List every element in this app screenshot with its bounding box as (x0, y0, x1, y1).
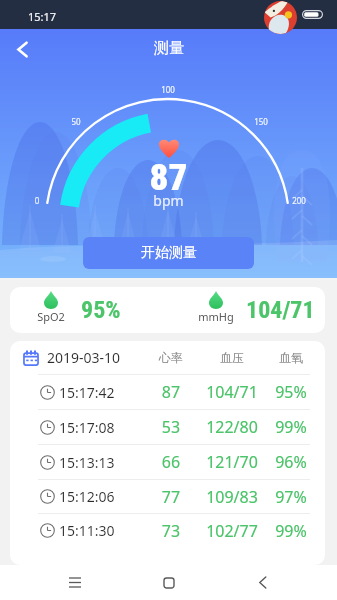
staticText: 96% (267, 451, 315, 473)
staticText: 121/70 (197, 451, 267, 473)
button[interactable]: 15:13:13 (10, 445, 325, 479)
staticText: 73 (145, 520, 197, 542)
staticText: 109/83 (197, 486, 267, 508)
button[interactable]: 15:17:42 (10, 375, 325, 409)
staticText: bpm (0, 191, 337, 210)
staticText: 95% (81, 296, 121, 324)
staticText: SpO2 (16, 309, 86, 324)
button[interactable]: Recents (55, 565, 95, 600)
staticText: 150 (247, 116, 275, 127)
staticText: 血压 (197, 350, 267, 365)
staticText: 100 (154, 84, 182, 95)
staticText: 15:17:42 (59, 383, 115, 402)
staticText: 血氧 (267, 350, 315, 365)
staticText: 15:17:08 (59, 418, 115, 437)
staticText: 50 (62, 116, 90, 127)
button[interactable]: 15:12:06 (10, 480, 325, 513)
staticText: 200 (285, 195, 313, 206)
staticText: 87 (0, 156, 337, 199)
staticText: 测量 (154, 39, 184, 58)
staticText: 104/71 (246, 296, 315, 324)
staticText: 122/80 (197, 416, 267, 438)
button[interactable]: 开始测量 (83, 237, 254, 269)
staticText: 心率 (145, 350, 197, 365)
staticText: 97% (267, 486, 315, 508)
staticText: 99% (267, 520, 315, 542)
button[interactable]: 15:11:30 (10, 514, 325, 547)
staticText: 15:13:13 (59, 453, 115, 472)
button[interactable]: Back (4, 31, 40, 67)
staticText: 2019-03-10 (47, 348, 121, 367)
staticText: 87 (145, 381, 197, 403)
button[interactable]: Home (149, 565, 189, 600)
button[interactable]: 15:17:08 (10, 410, 325, 444)
button[interactable]: Profile avatar (264, 1, 297, 34)
staticText: 102/77 (197, 520, 267, 542)
staticText: 66 (145, 451, 197, 473)
staticText: 95% (267, 381, 315, 403)
staticText: 开始测量 (141, 244, 197, 262)
staticText: 104/71 (197, 381, 267, 403)
staticText: mmHg (181, 309, 251, 324)
button[interactable]: Back (243, 565, 283, 600)
staticText: 15:17 (28, 9, 57, 24)
staticText: 99% (267, 416, 315, 438)
staticText: 53 (145, 416, 197, 438)
staticText: 15:12:06 (59, 487, 115, 506)
staticText: 77 (145, 486, 197, 508)
staticText: 0 (23, 195, 51, 206)
staticText: 15:11:30 (59, 521, 115, 540)
